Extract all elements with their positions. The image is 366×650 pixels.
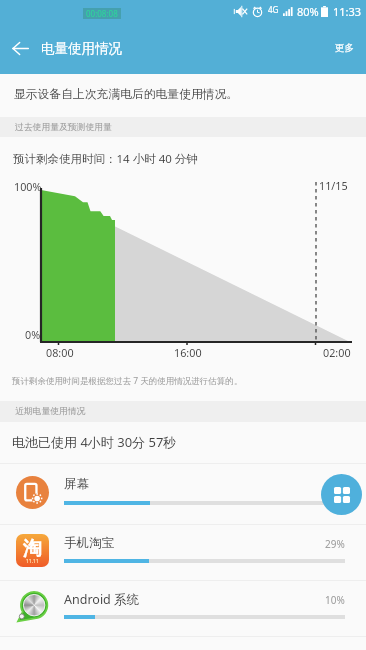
staticText: 淘	[23, 537, 42, 561]
staticText: 显示设备自上次充满电后的电量使用情况。	[14, 87, 239, 102]
button[interactable]: Back	[3, 22, 37, 74]
button[interactable]: 更多	[335, 42, 354, 54]
button[interactable]: 屏幕	[0, 463, 366, 524]
staticText: Android 系统	[64, 591, 140, 608]
staticText: 预计剩余使用时间是根据您过去 7 天的使用情况进行估算的。	[12, 375, 243, 387]
staticText: 11/15	[319, 178, 348, 193]
button[interactable]: 淘	[0, 524, 366, 580]
staticText: 16:00	[174, 345, 202, 360]
button[interactable]: Android 系统	[0, 580, 366, 636]
staticText: 11:33	[333, 4, 362, 19]
staticText: 02:00	[323, 345, 351, 360]
staticText: 10%	[325, 593, 345, 607]
button[interactable]: Apps	[321, 474, 362, 515]
staticText: 80%	[297, 4, 319, 19]
staticText: 屏幕	[64, 476, 89, 492]
staticText: 4G	[268, 4, 279, 15]
staticText: 过去使用量及预测使用量	[15, 122, 112, 133]
staticText: 11.11	[26, 558, 39, 565]
staticText: 电池已使用 4小时 30分 57秒	[12, 433, 177, 451]
staticText: 手机淘宝	[64, 535, 114, 551]
staticText: 更多	[335, 42, 354, 54]
staticText: 0%	[25, 327, 41, 342]
staticText: 29%	[325, 537, 345, 551]
staticText: 预计剩余使用时间：14 小时 40 分钟	[13, 151, 198, 167]
staticText: 100%	[14, 179, 42, 194]
staticText: 近期电量使用情况	[15, 406, 86, 417]
staticText: 电量使用情况	[41, 40, 122, 57]
staticText: 08:00	[46, 345, 74, 360]
staticText: 00:08:08	[86, 8, 118, 19]
